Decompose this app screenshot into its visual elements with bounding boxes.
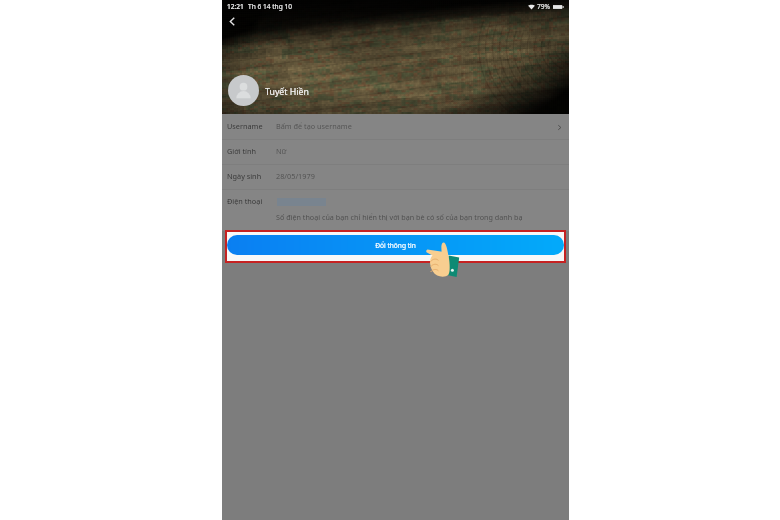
button[interactable]: Back — [224, 13, 240, 29]
staticText: 12:21 — [227, 2, 244, 11]
staticText: Th 6 14 thg 10 — [248, 2, 292, 11]
button[interactable]: Điện thoại — [222, 189, 569, 214]
staticText: Username — [227, 121, 263, 131]
button[interactable]: Ngày sinh — [222, 164, 569, 189]
staticText: 79% — [537, 2, 551, 11]
staticText: Số điện thoại của bạn chỉ hiển thị với b… — [276, 212, 523, 222]
button[interactable] — [228, 75, 259, 106]
staticText: Đổi thông tin — [375, 241, 416, 250]
staticText: Nữ — [276, 146, 287, 156]
staticText: Điện thoại — [227, 196, 263, 206]
staticText: 28/05/1979 — [276, 171, 315, 181]
staticText: Tuyết Hiền — [265, 86, 309, 98]
staticText: Ngày sinh — [227, 171, 262, 181]
button[interactable]: Đổi thông tin — [227, 235, 564, 255]
staticText: Bấm để tạo username — [276, 121, 352, 131]
button[interactable]: Username — [222, 114, 569, 139]
button[interactable]: Giới tính — [222, 139, 569, 164]
staticText: Giới tính — [227, 146, 257, 156]
